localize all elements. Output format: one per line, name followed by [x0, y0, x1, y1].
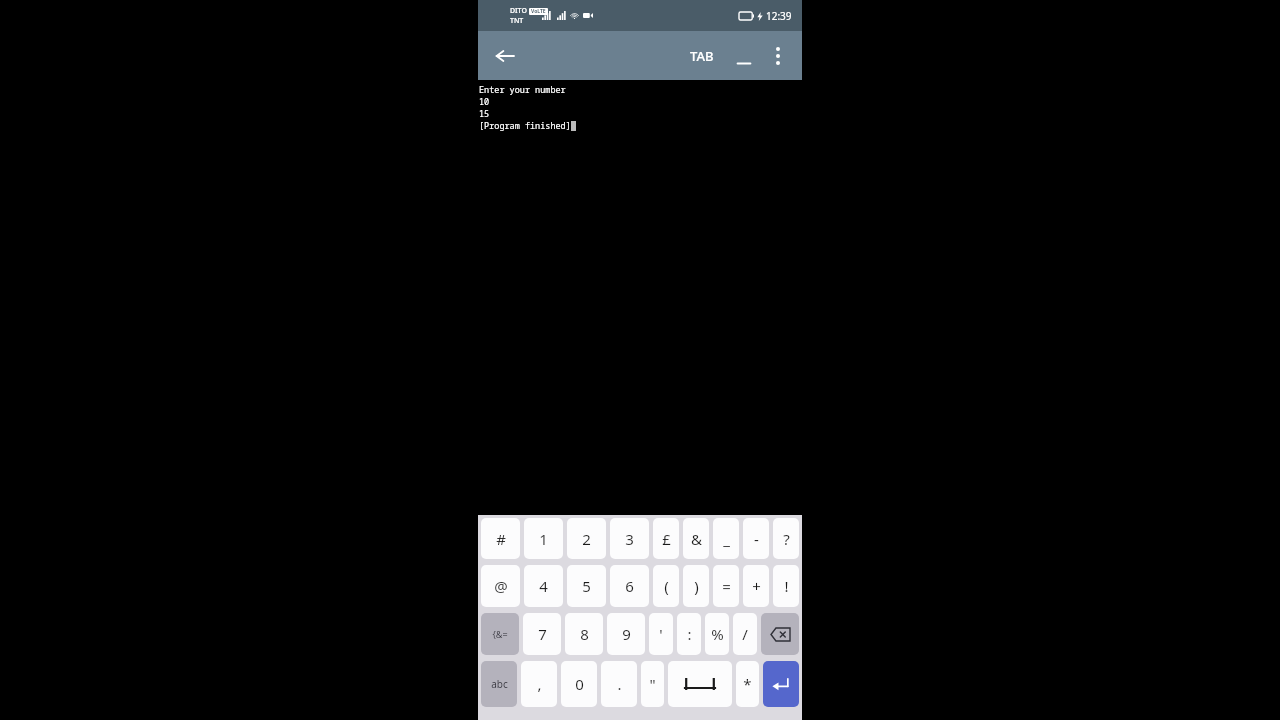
staticText: 1	[539, 529, 548, 549]
staticText: :	[687, 624, 692, 644]
button[interactable]: =	[713, 565, 739, 607]
button[interactable]: _	[713, 518, 739, 559]
button[interactable]: £	[653, 518, 679, 559]
button[interactable]: *	[736, 661, 759, 707]
staticText: ?	[783, 529, 790, 549]
staticText: {&=	[492, 628, 508, 640]
staticText: 10	[479, 96, 490, 108]
staticText: 8	[580, 624, 589, 644]
staticText: £	[662, 529, 671, 549]
staticText: .	[617, 674, 622, 694]
staticText: (	[664, 576, 669, 596]
staticText: ,	[537, 674, 542, 694]
button[interactable]: More options	[762, 40, 794, 72]
staticText: Enter your number	[479, 84, 566, 96]
button[interactable]: :	[677, 613, 701, 655]
staticText: VoLTE	[531, 8, 546, 15]
staticText: 2	[582, 529, 591, 549]
button[interactable]: (	[653, 565, 679, 607]
staticText: _	[723, 529, 730, 549]
button[interactable]: ?	[773, 518, 799, 559]
staticText: 9	[622, 624, 631, 644]
button[interactable]: 3	[610, 518, 649, 559]
staticText: )	[694, 576, 699, 596]
staticText: "	[649, 674, 656, 694]
staticText: '	[659, 624, 663, 644]
button[interactable]: %	[705, 613, 729, 655]
staticText: *	[743, 674, 752, 694]
staticText: /	[742, 624, 748, 644]
staticText: @	[494, 576, 508, 596]
button[interactable]: 7	[523, 613, 561, 655]
button[interactable]: 4	[524, 565, 563, 607]
button[interactable]: +	[743, 565, 769, 607]
staticText: [Program finished]	[479, 120, 571, 132]
button[interactable]: -	[743, 518, 769, 559]
button[interactable]: 2	[567, 518, 606, 559]
button[interactable]: @	[481, 565, 520, 607]
button[interactable]: /	[733, 613, 757, 655]
button[interactable]: 1	[524, 518, 563, 559]
button[interactable]: "	[641, 661, 664, 707]
staticText: 3	[625, 529, 634, 549]
staticText: 6	[625, 576, 634, 596]
button[interactable]: )	[683, 565, 709, 607]
button[interactable]: Backspace	[761, 613, 799, 655]
button[interactable]: 5	[567, 565, 606, 607]
button[interactable]: TAB	[690, 47, 714, 65]
button[interactable]: Space	[668, 661, 732, 707]
button[interactable]: Minimize	[730, 46, 758, 74]
staticText: &	[691, 529, 702, 549]
button[interactable]: 0	[561, 661, 597, 707]
button[interactable]: abc	[481, 661, 517, 707]
staticText: DITO	[510, 6, 527, 16]
button[interactable]: &	[683, 518, 709, 559]
staticText: +	[752, 576, 761, 596]
button[interactable]: Back	[489, 40, 521, 72]
staticText: abc	[491, 677, 508, 691]
staticText: 5	[582, 576, 591, 596]
button[interactable]: {&=	[481, 613, 519, 655]
button[interactable]: !	[773, 565, 799, 607]
button[interactable]: 6	[610, 565, 649, 607]
staticText: 4	[539, 576, 548, 596]
staticText: TNT	[510, 16, 524, 26]
staticText: TAB	[690, 47, 714, 65]
button[interactable]: #	[481, 518, 520, 559]
staticText: =	[722, 576, 731, 596]
staticText: 12:39	[766, 9, 792, 23]
button[interactable]: .	[601, 661, 637, 707]
button[interactable]: ,	[521, 661, 557, 707]
button[interactable]: '	[649, 613, 673, 655]
button[interactable]: 8	[565, 613, 603, 655]
staticText: 0	[575, 674, 584, 694]
button[interactable]: 9	[607, 613, 645, 655]
staticText: #	[496, 529, 506, 549]
staticText: 15	[479, 108, 490, 120]
button[interactable]: Enter	[763, 661, 799, 707]
staticText: 7	[538, 624, 547, 644]
staticText: %	[711, 624, 724, 644]
staticText: -	[754, 529, 759, 549]
staticText: !	[784, 576, 789, 596]
